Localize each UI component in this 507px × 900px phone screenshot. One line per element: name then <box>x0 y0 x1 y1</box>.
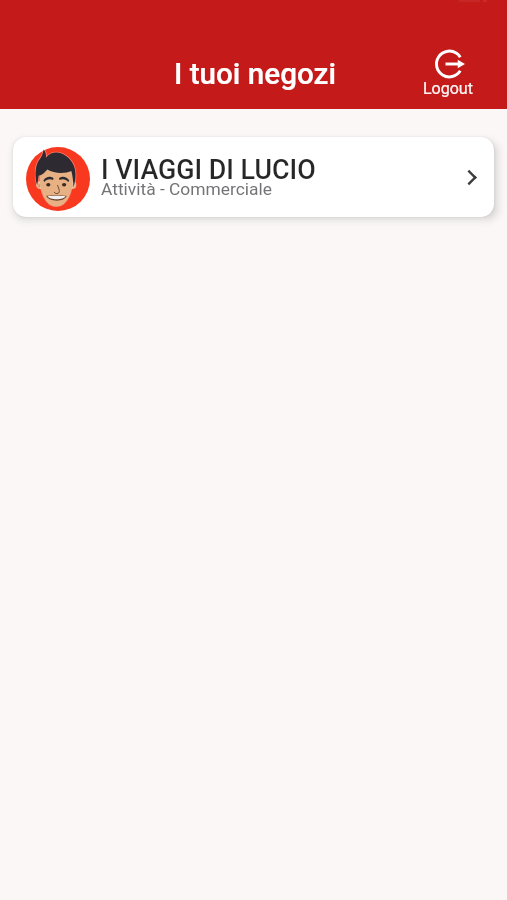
button[interactable]: I VIAGGI DI LUCIO <box>13 137 494 217</box>
staticText: I tuoi negozi <box>174 57 337 92</box>
other: Logout <box>435 50 465 78</box>
staticText: I VIAGGI DI LUCIO <box>101 154 316 185</box>
other: Open <box>468 171 476 184</box>
staticText: Attività - Commerciale <box>101 179 272 199</box>
button[interactable]: Logout <box>418 47 478 101</box>
staticText: Logout <box>423 79 473 98</box>
